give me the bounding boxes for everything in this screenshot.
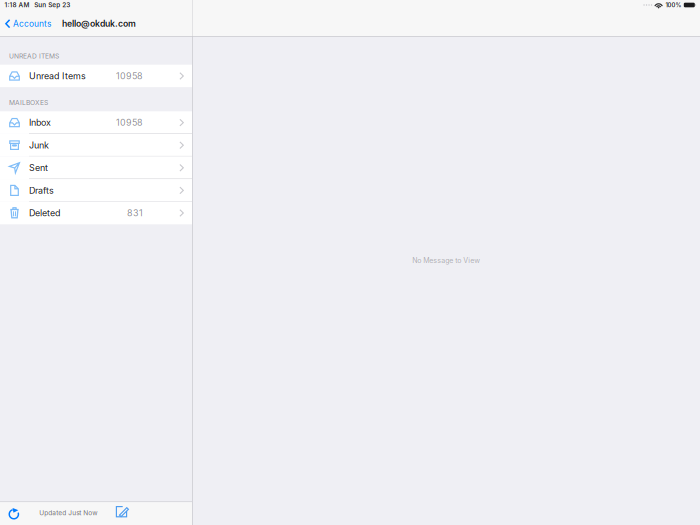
staticText: Junk xyxy=(29,140,49,151)
button[interactable]: Refresh xyxy=(4,502,24,525)
staticText: Sent xyxy=(29,162,48,173)
staticText: No Message to View xyxy=(412,256,480,265)
button[interactable]: Drafts xyxy=(0,179,192,202)
button[interactable]: Compose xyxy=(112,501,134,524)
button[interactable]: Deleted xyxy=(0,202,192,224)
button[interactable]: Accounts xyxy=(0,14,54,33)
staticText: 10958 xyxy=(116,117,143,128)
staticText: 100% xyxy=(665,1,681,9)
staticText: Deleted xyxy=(29,208,60,218)
button[interactable]: Inbox xyxy=(0,111,192,134)
staticText: hello@okduk.com xyxy=(62,18,136,29)
staticText: Accounts xyxy=(13,19,51,29)
button[interactable]: Junk xyxy=(0,134,192,156)
staticText: Inbox xyxy=(29,117,51,128)
staticText: MAILBOXES xyxy=(9,99,48,107)
staticText: 10958 xyxy=(116,71,143,81)
staticText: UNREAD ITEMS xyxy=(9,52,59,60)
staticText: Drafts xyxy=(29,185,54,196)
staticText: Updated Just Now xyxy=(39,509,97,517)
staticText: Unread Items xyxy=(29,71,86,81)
staticText: 831 xyxy=(127,208,143,218)
staticText: 1:18 AM xyxy=(4,1,29,9)
staticText: Sun Sep 23 xyxy=(34,1,70,9)
button[interactable]: Unread Items xyxy=(0,65,192,87)
button[interactable]: Sent xyxy=(0,156,192,179)
